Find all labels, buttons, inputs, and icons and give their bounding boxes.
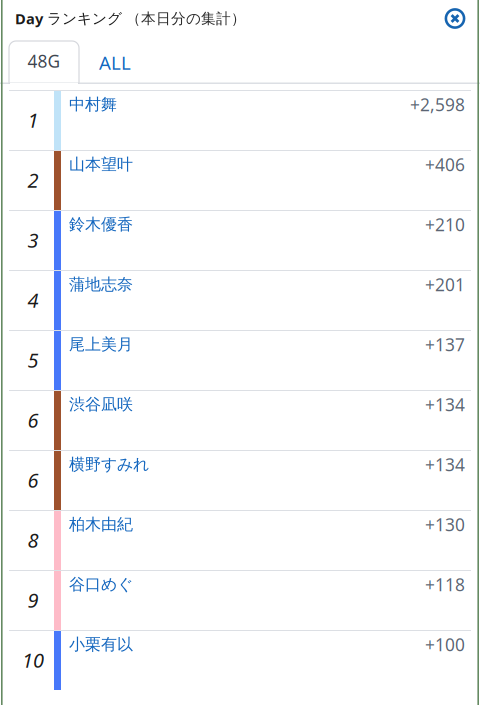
button[interactable]: 1 <box>0 90 480 150</box>
button[interactable]: 9 <box>0 570 480 630</box>
button[interactable]: 10 <box>0 630 480 690</box>
button[interactable]: ALL <box>79 43 148 81</box>
staticText: +201 <box>425 273 465 296</box>
staticText: 中村舞 <box>69 95 117 114</box>
staticText: 10 <box>22 647 44 673</box>
button[interactable]: 6 <box>0 390 480 450</box>
staticText: 横野すみれ <box>69 455 149 474</box>
staticText: +118 <box>425 573 465 596</box>
button[interactable]: 8 <box>0 510 480 570</box>
staticText: 8 <box>27 527 38 553</box>
staticText: 小栗有以 <box>69 635 133 654</box>
staticText: 3 <box>27 227 38 253</box>
staticText: （本日分の集計） <box>122 9 246 27</box>
button[interactable]: 6 <box>0 450 480 510</box>
staticText: +137 <box>425 333 465 356</box>
staticText: 2 <box>27 167 38 193</box>
staticText: 鈴木優香 <box>69 215 133 234</box>
staticText: ALL <box>99 50 131 75</box>
staticText: 6 <box>27 407 38 433</box>
button[interactable]: 4 <box>0 270 480 330</box>
staticText: ランキング <box>47 9 122 27</box>
staticText: Day <box>15 9 47 28</box>
button[interactable]: 2 <box>0 150 480 210</box>
staticText: +100 <box>425 633 465 656</box>
staticText: 山本望叶 <box>69 155 133 174</box>
staticText: 4 <box>27 287 38 313</box>
staticText: +210 <box>425 213 465 236</box>
staticText: 柏木由紀 <box>69 515 133 534</box>
staticText: +134 <box>425 453 465 476</box>
staticText: 渋谷凪咲 <box>69 395 133 414</box>
button[interactable]: 48G <box>9 41 79 84</box>
staticText: +130 <box>425 513 465 536</box>
staticText: +2,598 <box>410 93 465 116</box>
staticText: +406 <box>425 153 465 176</box>
staticText: +134 <box>425 393 465 416</box>
staticText: 48G <box>27 49 60 72</box>
button[interactable]: 3 <box>0 210 480 270</box>
button[interactable]: 5 <box>0 330 480 390</box>
staticText: 蒲地志奈 <box>69 275 133 294</box>
button[interactable]: Close <box>444 7 466 29</box>
staticText: 9 <box>27 587 38 613</box>
staticText: 1 <box>27 107 38 133</box>
staticText: 5 <box>27 347 38 373</box>
staticText: 谷口めぐ <box>69 575 133 594</box>
staticText: 尾上美月 <box>69 335 133 354</box>
staticText: 6 <box>27 467 38 493</box>
